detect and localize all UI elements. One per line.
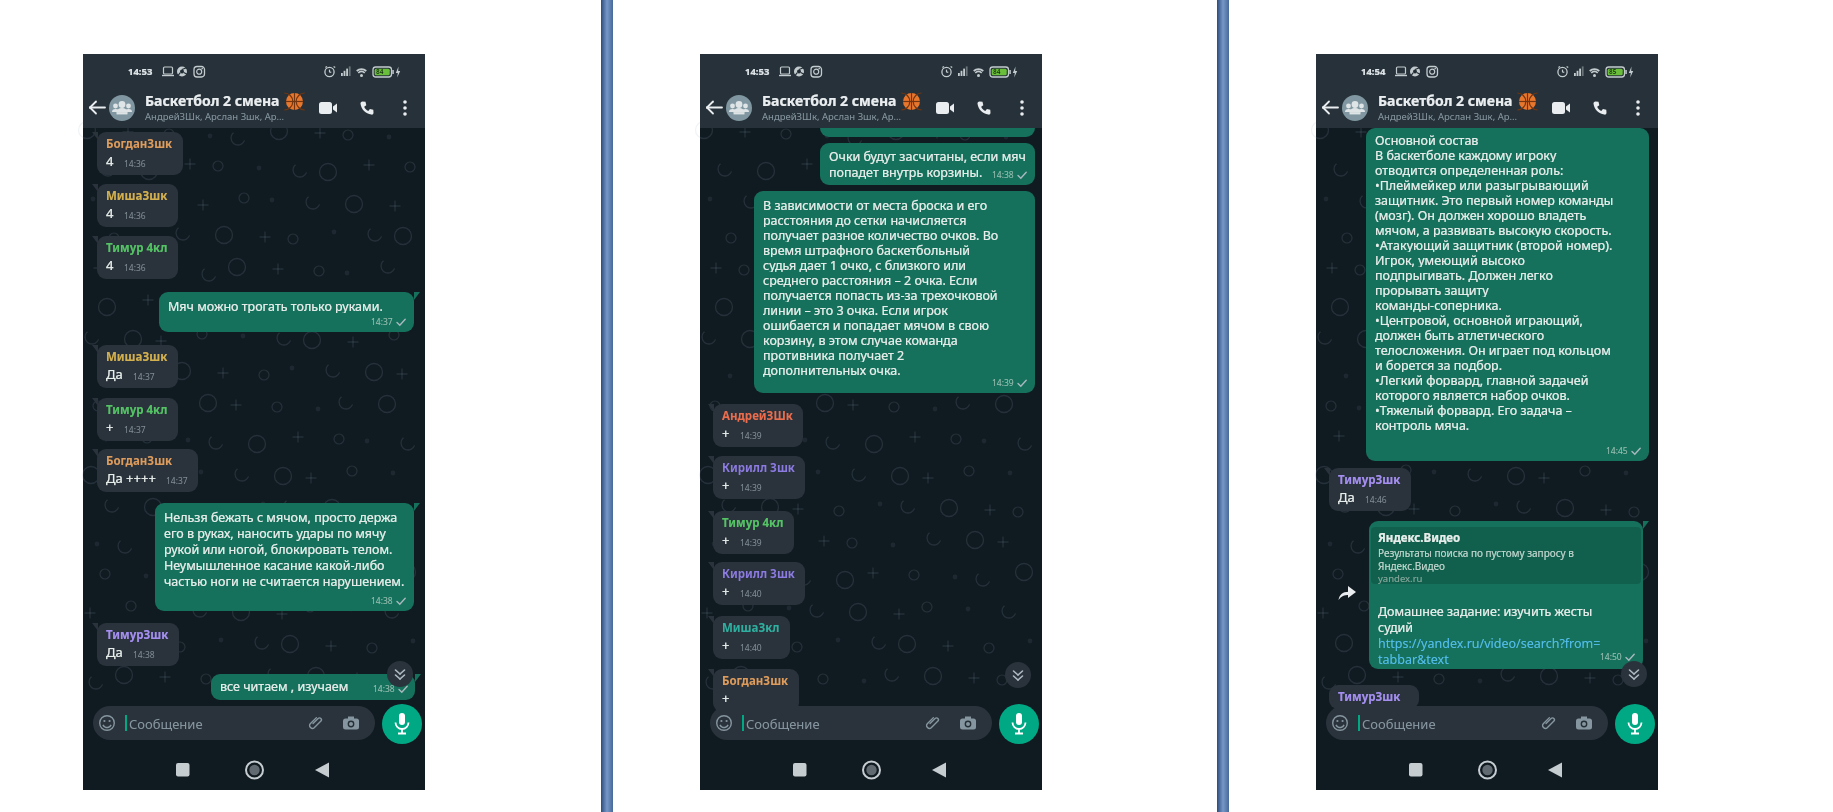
button[interactable] [1409, 761, 1423, 779]
button[interactable] [960, 716, 976, 730]
button[interactable] [977, 101, 991, 115]
staticText: Результаты поиска по пустому запросу в [1378, 546, 1574, 560]
staticText: отводится определенная роль: [1375, 162, 1564, 177]
button[interactable] [932, 761, 947, 779]
button[interactable]: ТимурЗшк [106, 627, 169, 661]
button[interactable] [1326, 706, 1608, 740]
button[interactable] [1479, 761, 1497, 779]
button[interactable] [315, 761, 330, 779]
button[interactable] [1323, 101, 1338, 114]
staticText: 14:39 [740, 482, 762, 494]
staticText: контроль мяча. [1375, 417, 1470, 432]
staticText: 14:38 [373, 683, 395, 695]
staticText: все читаем , изучаем [220, 678, 349, 695]
staticText: расстояния до сетки начисляется [763, 212, 967, 227]
button[interactable]: все читаем , изучаем [211, 674, 415, 700]
staticText: Баскетбол 2 смена [1378, 91, 1513, 110]
staticText: ТимурЗшк [106, 627, 169, 643]
button[interactable] [1593, 101, 1607, 115]
button[interactable] [99, 715, 115, 731]
button[interactable]: Тимур 4кл [106, 402, 168, 436]
button[interactable] [382, 704, 422, 744]
staticText: 4 [106, 152, 114, 170]
button[interactable] [1621, 661, 1647, 687]
button[interactable]: БогданЗшк [106, 453, 188, 487]
staticText: •Тяжелый форвард. Его задача – [1375, 402, 1572, 417]
button[interactable] [1636, 100, 1640, 116]
staticText: 4 [106, 256, 114, 274]
button[interactable]: Очки будут засчитаны, если мяч [820, 143, 1035, 185]
button[interactable]: В зависимости от места броска и его [754, 191, 1035, 393]
button[interactable]: Тимур 4кл [722, 515, 784, 549]
button[interactable] [793, 761, 807, 779]
staticText: Домашнее задание: изучить жесты [1378, 603, 1593, 620]
staticText: 14:40 [740, 588, 762, 600]
button[interactable] [246, 761, 264, 779]
staticText: Неумышленное касание какой-либо [164, 557, 385, 573]
button[interactable] [707, 101, 722, 114]
staticText: защитник. Это первый номер команды [1375, 192, 1614, 207]
button[interactable] [90, 101, 105, 114]
staticText: 14:46 [1365, 494, 1387, 506]
staticText: 84 [376, 67, 384, 76]
staticText: Да [1338, 488, 1355, 506]
button[interactable]: Кирилл Зшк [722, 566, 795, 600]
button[interactable] [1548, 761, 1563, 779]
staticText: Да ++++ [106, 469, 156, 487]
button[interactable] [403, 100, 407, 116]
staticText: 14:36 [124, 262, 146, 274]
button[interactable] [1615, 704, 1655, 744]
button[interactable]: Кирилл Зшк [722, 460, 795, 494]
button[interactable] [863, 761, 881, 779]
button[interactable]: Тимур 4кл [106, 240, 168, 274]
button[interactable] [1332, 715, 1348, 731]
button[interactable] [387, 661, 413, 687]
button[interactable] [1005, 662, 1031, 688]
staticText: МишаЗкл [722, 620, 780, 636]
button[interactable] [307, 715, 323, 731]
staticText: + [106, 418, 114, 436]
staticText: БогданЗшк [106, 136, 173, 152]
button[interactable]: АндрейЗШк [722, 408, 793, 442]
staticText: •Плеймейкер или разыгрывающий [1375, 177, 1589, 192]
button[interactable]: ТимурЗшк [1338, 472, 1401, 506]
button[interactable]: Мяч можно трогать только руками. [159, 292, 414, 332]
button[interactable]: Нельзя бежать с мячом, просто держа [155, 503, 414, 611]
staticText: Яндекс.Видео [1378, 530, 1461, 546]
button[interactable]: МишаЗшк [106, 188, 168, 222]
staticText: + [722, 582, 730, 600]
button[interactable] [360, 101, 374, 115]
staticText: 14:39 [740, 430, 762, 442]
button[interactable] [1576, 716, 1592, 730]
button[interactable] [1552, 102, 1570, 114]
button[interactable] [924, 715, 940, 731]
button[interactable]: Основной состав [1366, 128, 1649, 461]
button[interactable]: МишаЗшк [106, 349, 168, 383]
staticText: 14:37 [371, 316, 393, 328]
button[interactable] [1020, 100, 1024, 116]
button[interactable]: БогданЗшк [106, 136, 173, 170]
staticText: 4 [106, 204, 114, 222]
staticText: попадет внутрь корзины. [829, 164, 983, 180]
button[interactable] [319, 102, 337, 114]
button[interactable] [176, 761, 190, 779]
staticText: Нельзя бежать с мячом, просто держа [164, 509, 398, 525]
button[interactable] [936, 102, 954, 114]
staticText: АндрейЗШк, Арслан Зшк, Ар... [1378, 110, 1518, 123]
staticText: yandex.ru [1378, 572, 1423, 584]
staticText: АндрейЗШк, Арслан Зшк, Ар... [145, 110, 285, 123]
staticText: 14:36 [124, 210, 146, 222]
button[interactable] [710, 706, 992, 740]
staticText: его в руках, наносить удары по мячу [164, 525, 386, 541]
button[interactable] [343, 716, 359, 730]
button[interactable] [93, 706, 375, 740]
button[interactable] [716, 715, 732, 731]
button[interactable]: БогданЗшк [722, 673, 789, 707]
button[interactable] [999, 704, 1039, 744]
button[interactable] [1540, 715, 1556, 731]
button[interactable]: МишаЗкл [722, 620, 780, 654]
staticText: tabbar&text [1378, 651, 1449, 668]
button[interactable]: Яндекс.Видео [1369, 521, 1643, 669]
staticText: Да [106, 365, 123, 383]
staticText: АндрейЗШк [722, 408, 793, 424]
